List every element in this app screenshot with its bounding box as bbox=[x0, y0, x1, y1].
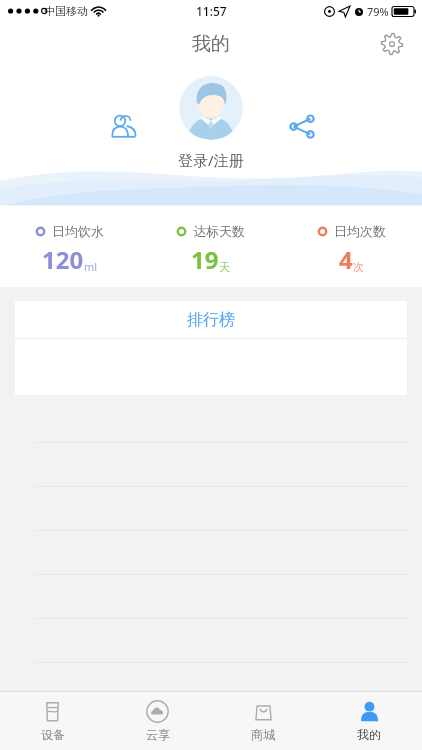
button[interactable]: 日均饮水 bbox=[0, 223, 140, 276]
staticText: 日均次数 bbox=[334, 223, 386, 239]
button[interactable]: 我的 bbox=[316, 692, 422, 750]
button[interactable]: 登录/注册 bbox=[178, 150, 244, 170]
staticText: 中国移动 bbox=[44, 4, 88, 18]
staticText: 79% bbox=[367, 4, 389, 19]
button[interactable]: Share bbox=[279, 103, 325, 149]
staticText: 次 bbox=[353, 260, 364, 274]
staticText: 天 bbox=[219, 260, 230, 274]
staticText: 120 bbox=[42, 243, 84, 276]
staticText: ml bbox=[84, 259, 98, 274]
button[interactable]: Settings bbox=[376, 28, 408, 60]
button[interactable]: 排行榜 bbox=[15, 301, 407, 338]
staticText: 4 bbox=[339, 243, 353, 276]
staticText: 我的 bbox=[192, 32, 230, 56]
staticText: 云享 bbox=[146, 727, 170, 742]
staticText: 我的 bbox=[357, 727, 381, 742]
button[interactable]: 日均次数 bbox=[281, 223, 422, 276]
button[interactable]: Friends bbox=[100, 103, 146, 149]
staticText: 19 bbox=[191, 243, 219, 276]
staticText: 排行榜 bbox=[187, 310, 235, 330]
staticText: 达标天数 bbox=[193, 223, 245, 239]
staticText: 11:57 bbox=[196, 3, 227, 19]
staticText: 商城 bbox=[251, 727, 275, 742]
button[interactable]: Avatar bbox=[179, 76, 243, 140]
button[interactable]: 商城 bbox=[210, 692, 316, 750]
button[interactable]: 达标天数 bbox=[140, 223, 281, 276]
staticText: 设备 bbox=[41, 727, 65, 742]
staticText: 日均饮水 bbox=[52, 223, 104, 239]
button[interactable]: 设备 bbox=[0, 692, 105, 750]
button[interactable]: 云享 bbox=[105, 692, 210, 750]
staticText: 登录/注册 bbox=[178, 150, 244, 170]
